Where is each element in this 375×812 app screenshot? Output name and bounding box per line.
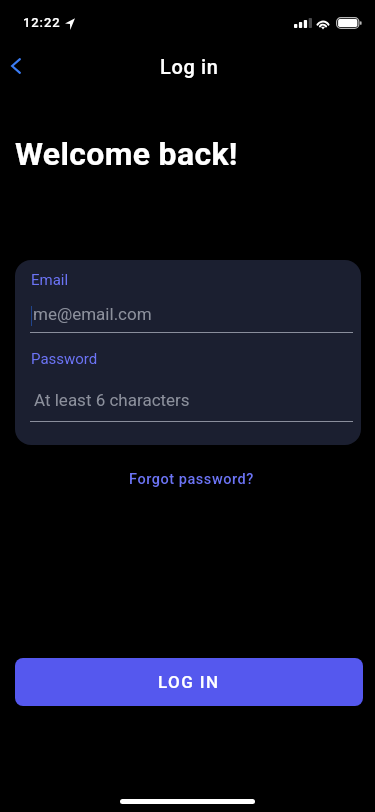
staticText: LOG IN (158, 672, 220, 692)
button[interactable]: LOG IN (15, 658, 363, 706)
staticText: Welcome back! (15, 135, 238, 173)
staticText: At least 6 characters (34, 390, 190, 410)
button[interactable]: At least 6 characters (15, 385, 361, 425)
staticText: Forgot password? (129, 471, 254, 488)
button[interactable]: Back (0, 44, 38, 88)
staticText: 12:22 (23, 15, 61, 30)
button[interactable]: me@email.com (15, 300, 361, 335)
button[interactable]: Forgot password? (124, 465, 259, 494)
staticText: Password (31, 350, 98, 368)
staticText: Log in (160, 55, 219, 78)
staticText: me@email.com (33, 304, 152, 324)
staticText: Email (31, 271, 69, 289)
